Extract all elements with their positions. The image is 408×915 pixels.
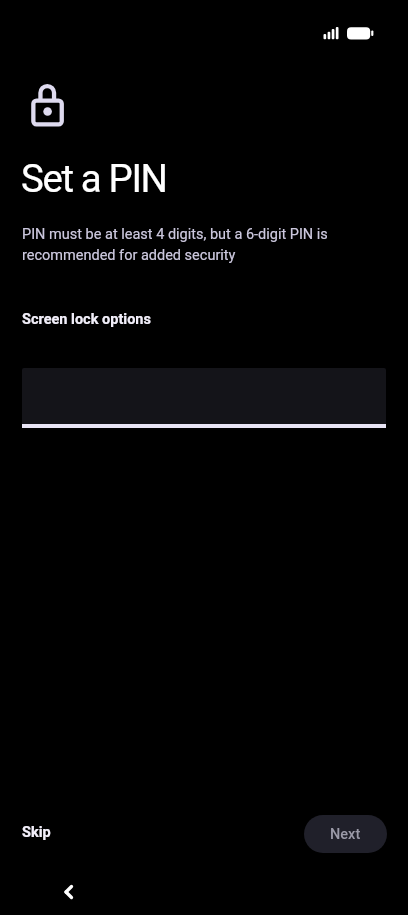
staticText: Skip	[22, 824, 51, 841]
staticText: Screen lock options	[22, 311, 151, 328]
staticText: Next	[330, 826, 361, 843]
button[interactable]: Back	[50, 874, 86, 910]
button[interactable]: Screen lock options	[10, 295, 163, 344]
button[interactable]	[22, 368, 386, 428]
staticText: Set a PIN	[21, 156, 167, 201]
button[interactable]: Next	[304, 815, 387, 853]
button[interactable]: Skip	[6, 806, 67, 859]
staticText: PIN must be at least 4 digits, but a 6-d…	[22, 226, 344, 263]
